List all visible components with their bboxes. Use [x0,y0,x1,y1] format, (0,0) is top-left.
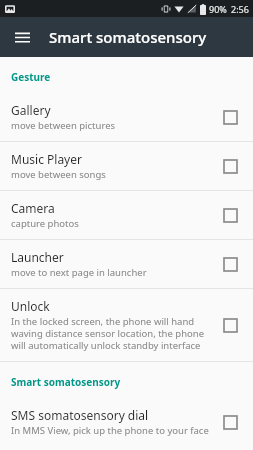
staticText: Launcher [11,249,64,265]
button[interactable]: Toggle checkbox [217,153,243,179]
staticText: Smart somatosensory [49,27,207,47]
staticText: Unlock [11,298,50,314]
button[interactable]: Camera [0,191,253,239]
staticText: SMS somatosensory dial [11,407,149,423]
button[interactable]: Toggle checkbox [217,251,243,277]
button[interactable]: Toggle checkbox [217,409,243,435]
button[interactable]: Unlock [0,289,253,361]
staticText: move between songs [11,168,106,181]
staticText: In MMS View, pick up the phone to your f… [11,424,209,437]
button[interactable]: SMS somatosensory dial [0,398,253,446]
staticText: Camera [11,200,55,216]
staticText: In the locked screen, the phone will han… [11,315,209,352]
staticText: move to next page in launcher [11,266,147,279]
button[interactable]: Launcher [0,240,253,288]
button[interactable]: Music Player [0,142,253,190]
button[interactable]: Open navigation menu [8,23,36,51]
staticText: Smart somatosensory [11,375,121,389]
staticText: 90% [209,3,227,15]
staticText: capture photos [11,217,79,230]
staticText: move between pictures [11,119,116,132]
staticText: Gallery [11,102,51,118]
button[interactable]: Toggle checkbox [217,104,243,130]
button[interactable]: Gallery [0,93,253,141]
button[interactable]: Toggle checkbox [217,312,243,338]
staticText: Gesture [11,70,51,84]
staticText: 2:56 [231,3,249,15]
button[interactable]: Toggle checkbox [217,202,243,228]
staticText: Music Player [11,151,82,167]
